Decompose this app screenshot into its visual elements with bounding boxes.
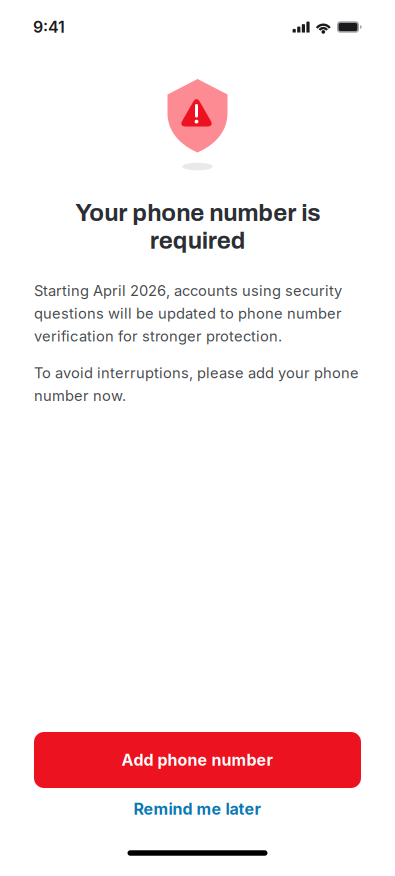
staticText: To avoid interruptions, please add your …	[34, 364, 359, 404]
staticText: Your phone number is required	[75, 200, 320, 254]
staticText: Add phone number	[121, 750, 273, 770]
button[interactable]: Remind me later	[34, 788, 361, 830]
staticText: 9:41	[33, 17, 65, 37]
staticText: Remind me later	[133, 799, 261, 819]
button[interactable]: Add phone number	[34, 732, 361, 788]
staticText: Starting April 2026, accounts using secu…	[34, 282, 342, 345]
